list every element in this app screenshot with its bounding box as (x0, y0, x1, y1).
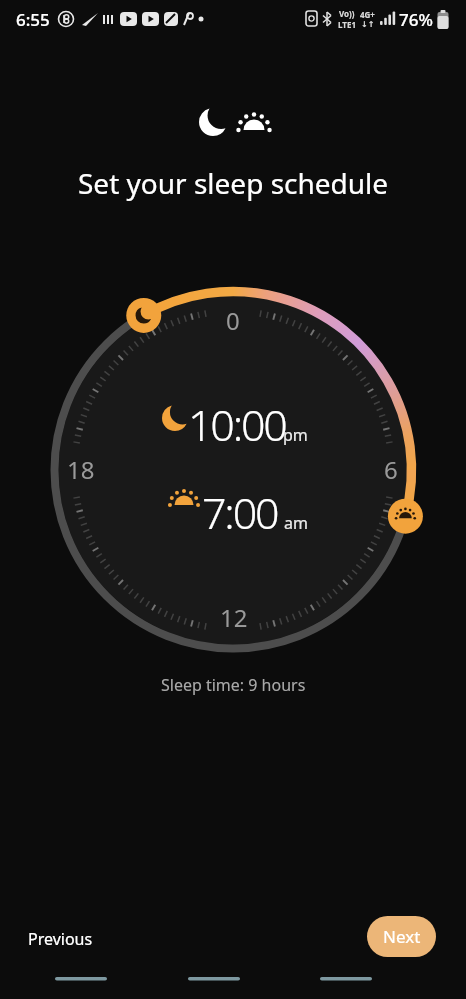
staticText: Sleep time: 9 hours (161, 674, 306, 696)
staticText: 76% (399, 8, 433, 31)
staticText: 10:00 (188, 395, 286, 454)
staticText: 6:55 (16, 8, 50, 31)
staticText: ↓↑ (361, 20, 375, 29)
staticText: 6 (384, 453, 398, 486)
staticText: 0 (226, 304, 240, 337)
button[interactable]: Next (367, 916, 436, 957)
staticText: pm (283, 424, 308, 446)
staticText: 12 (220, 601, 248, 634)
staticText: LTE1 (338, 19, 356, 30)
staticText: 7:00 (202, 483, 278, 542)
staticText: Previous (28, 928, 93, 950)
staticText: Set your sleep schedule (78, 164, 389, 202)
staticText: 4G+ (360, 9, 375, 20)
staticText: 18 (67, 453, 95, 486)
staticText: am (284, 512, 308, 534)
staticText: Next (383, 925, 421, 948)
staticText: Vo)) (339, 8, 355, 19)
button[interactable]: Previous (16, 920, 105, 958)
